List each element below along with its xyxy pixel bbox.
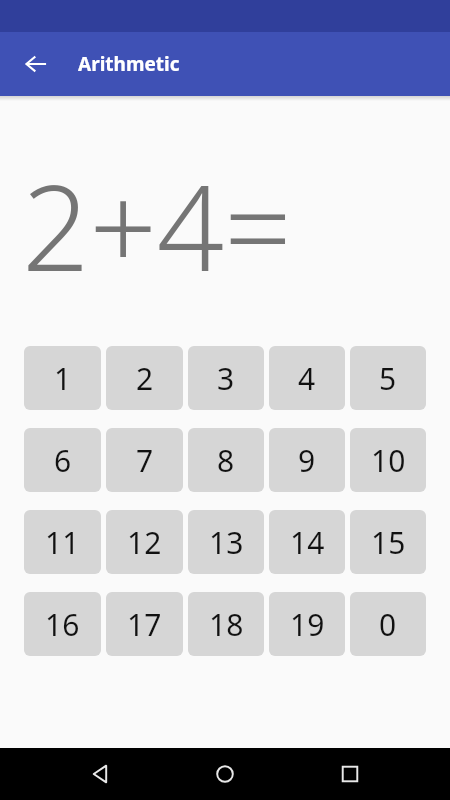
staticText: 15 — [371, 522, 406, 563]
button[interactable]: Back — [77, 750, 125, 798]
staticText: 12 — [127, 522, 162, 563]
button[interactable]: 4 — [269, 346, 345, 410]
staticText: 14 — [290, 522, 325, 563]
button[interactable]: 16 — [24, 592, 101, 656]
button[interactable]: Back — [16, 44, 56, 84]
button[interactable]: 9 — [269, 428, 345, 492]
staticText: 19 — [290, 604, 325, 645]
button[interactable]: 2 — [106, 346, 183, 410]
staticText: 17 — [127, 604, 162, 645]
staticText: 6 — [54, 440, 72, 481]
button[interactable]: 18 — [188, 592, 264, 656]
button[interactable]: 10 — [350, 428, 426, 492]
staticText: 11 — [45, 522, 80, 563]
button[interactable]: 6 — [24, 428, 101, 492]
staticText: 10 — [371, 440, 406, 481]
staticText: 3 — [217, 358, 235, 399]
staticText: 16 — [45, 604, 80, 645]
button[interactable]: 17 — [106, 592, 183, 656]
staticText: 1 — [54, 358, 72, 399]
button[interactable]: 14 — [269, 510, 345, 574]
staticText: Arithmetic — [78, 51, 180, 77]
button[interactable]: 13 — [188, 510, 264, 574]
staticText: 5 — [379, 358, 397, 399]
button[interactable]: Recents — [326, 750, 374, 798]
button[interactable]: 1 — [24, 346, 101, 410]
staticText: 13 — [209, 522, 244, 563]
staticText: 2 — [136, 358, 154, 399]
button[interactable]: 0 — [350, 592, 426, 656]
button[interactable]: Home — [201, 750, 249, 798]
button[interactable]: 11 — [24, 510, 101, 574]
staticText: 8 — [217, 440, 235, 481]
staticText: 9 — [298, 440, 316, 481]
button[interactable]: 19 — [269, 592, 345, 656]
button[interactable]: 12 — [106, 510, 183, 574]
button[interactable]: 7 — [106, 428, 183, 492]
button[interactable]: 5 — [350, 346, 426, 410]
staticText: 4 — [298, 358, 316, 399]
staticText: 2+4= — [22, 145, 292, 306]
button[interactable]: 8 — [188, 428, 264, 492]
staticText: 7 — [136, 440, 154, 481]
button[interactable]: 15 — [350, 510, 426, 574]
button[interactable]: 3 — [188, 346, 264, 410]
staticText: 0 — [379, 604, 397, 645]
staticText: 18 — [209, 604, 244, 645]
